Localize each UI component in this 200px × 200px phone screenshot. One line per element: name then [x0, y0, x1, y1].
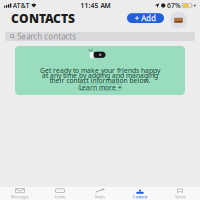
staticText: Add: [141, 13, 156, 23]
staticText: Events: [54, 194, 65, 199]
staticText: their contact information below.: [49, 76, 150, 85]
staticText: at any time by adding and managing: [42, 71, 158, 80]
button[interactable]: Profile: [170, 12, 187, 29]
staticText: AT&T: [13, 1, 30, 10]
staticText: 11:45 AM: [81, 1, 111, 10]
staticText: 67%: [167, 1, 181, 10]
button[interactable]: Search contacts: [5, 32, 195, 41]
staticText: Notes: [95, 194, 105, 199]
staticText: Saved: [175, 194, 185, 199]
button[interactable]: Learn more: [78, 84, 122, 91]
button[interactable]: Add: [127, 13, 164, 23]
staticText: CONTACTS: [11, 10, 75, 26]
button[interactable]: Events: [40, 185, 80, 200]
button[interactable]: Messages: [0, 185, 40, 200]
button[interactable]: Saved: [160, 185, 200, 200]
staticText: Contacts: [132, 194, 147, 199]
button[interactable]: Contacts: [120, 185, 160, 200]
staticText: Get ready to make your friends happy: [40, 66, 160, 75]
staticText: Learn more: [79, 83, 116, 92]
staticText: Messages: [11, 194, 29, 199]
button[interactable]: Notes: [80, 185, 120, 200]
staticText: Search contacts: [17, 31, 76, 42]
